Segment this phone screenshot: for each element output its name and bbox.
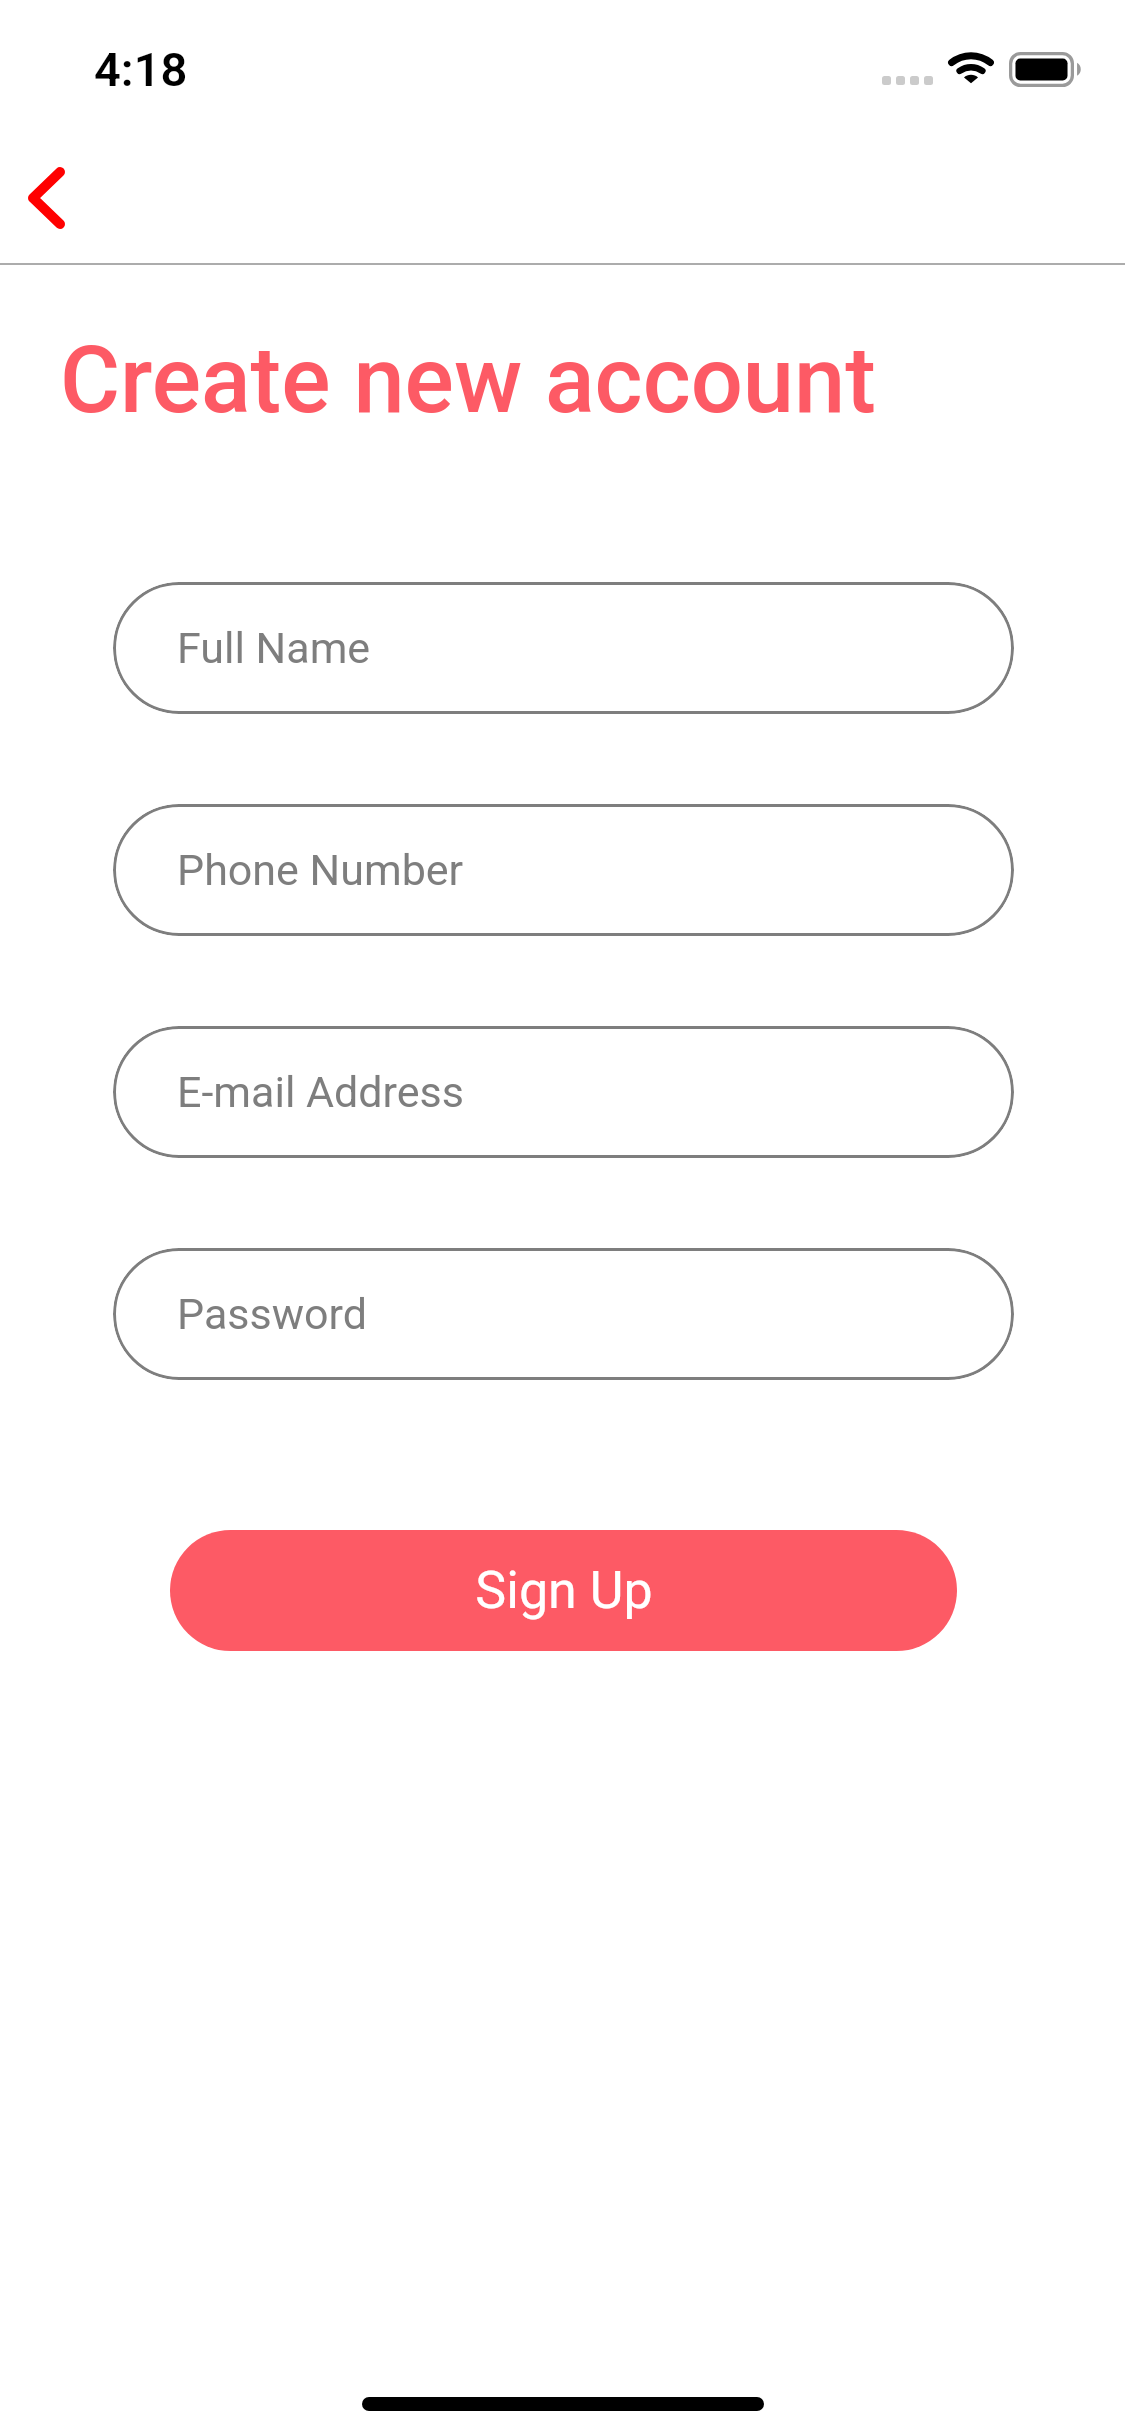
button[interactable]: Sign Up [170, 1530, 957, 1651]
button[interactable]: Phone Number [113, 804, 1014, 936]
staticText: 4:18 [94, 42, 188, 97]
button[interactable]: Full Name [113, 582, 1014, 714]
staticText: Phone Number [177, 845, 464, 895]
button[interactable]: E-mail Address [113, 1026, 1014, 1158]
staticText: E-mail Address [177, 1067, 464, 1117]
staticText: Sign Up [475, 1560, 653, 1621]
staticText: Full Name [177, 623, 371, 673]
staticText: Create new account [60, 327, 876, 435]
button[interactable]: Password [113, 1248, 1014, 1380]
staticText: Password [177, 1289, 367, 1339]
button[interactable]: Back [0, 132, 110, 252]
